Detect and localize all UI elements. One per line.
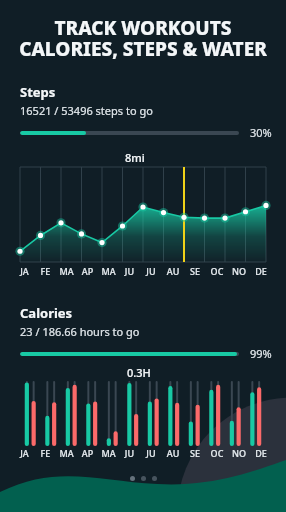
staticText: FE (35, 265, 56, 277)
staticText: AP (77, 265, 98, 277)
staticText: FE (35, 447, 56, 459)
staticText: JA (14, 265, 35, 277)
staticText: 23 / 186.66 hours to go (20, 324, 140, 339)
staticText: TRACK WORKOUTS CALORIES, STEPS & WATER (6, 15, 280, 62)
staticText: 0.3H (127, 365, 286, 380)
staticText: JU (119, 447, 140, 459)
staticText: AU (162, 265, 184, 277)
staticText: SE (184, 265, 206, 277)
staticText: SE (184, 447, 206, 459)
staticText: Steps (20, 83, 56, 101)
staticText: JU (140, 447, 162, 459)
button[interactable]: Page 3 (152, 476, 157, 481)
staticText: MA (98, 265, 119, 277)
staticText: OC (206, 447, 228, 459)
staticText: 99% (250, 346, 272, 361)
staticText: DE (250, 265, 272, 277)
staticText: 8mi (125, 150, 286, 165)
button[interactable]: Page 1 (130, 476, 135, 481)
button[interactable]: Calories bar chart (20, 382, 266, 444)
button[interactable]: Steps line chart (20, 167, 266, 262)
button[interactable]: Page 2 (141, 476, 146, 481)
staticText: JA (14, 447, 35, 459)
staticText: AP (77, 447, 98, 459)
staticText: NO (228, 265, 250, 277)
staticText: MA (98, 447, 119, 459)
staticText: MA (56, 447, 77, 459)
staticText: MA (56, 265, 77, 277)
staticText: Calories (20, 304, 73, 322)
staticText: JU (119, 265, 140, 277)
staticText: 16521 / 53496 steps to go (20, 103, 153, 118)
staticText: JU (140, 265, 162, 277)
button[interactable]: Steps (0, 83, 286, 140)
staticText: DE (250, 447, 272, 459)
staticText: OC (206, 265, 228, 277)
button[interactable]: Calories (0, 304, 286, 361)
staticText: 30% (250, 125, 272, 140)
staticText: NO (228, 447, 250, 459)
staticText: AU (162, 447, 184, 459)
